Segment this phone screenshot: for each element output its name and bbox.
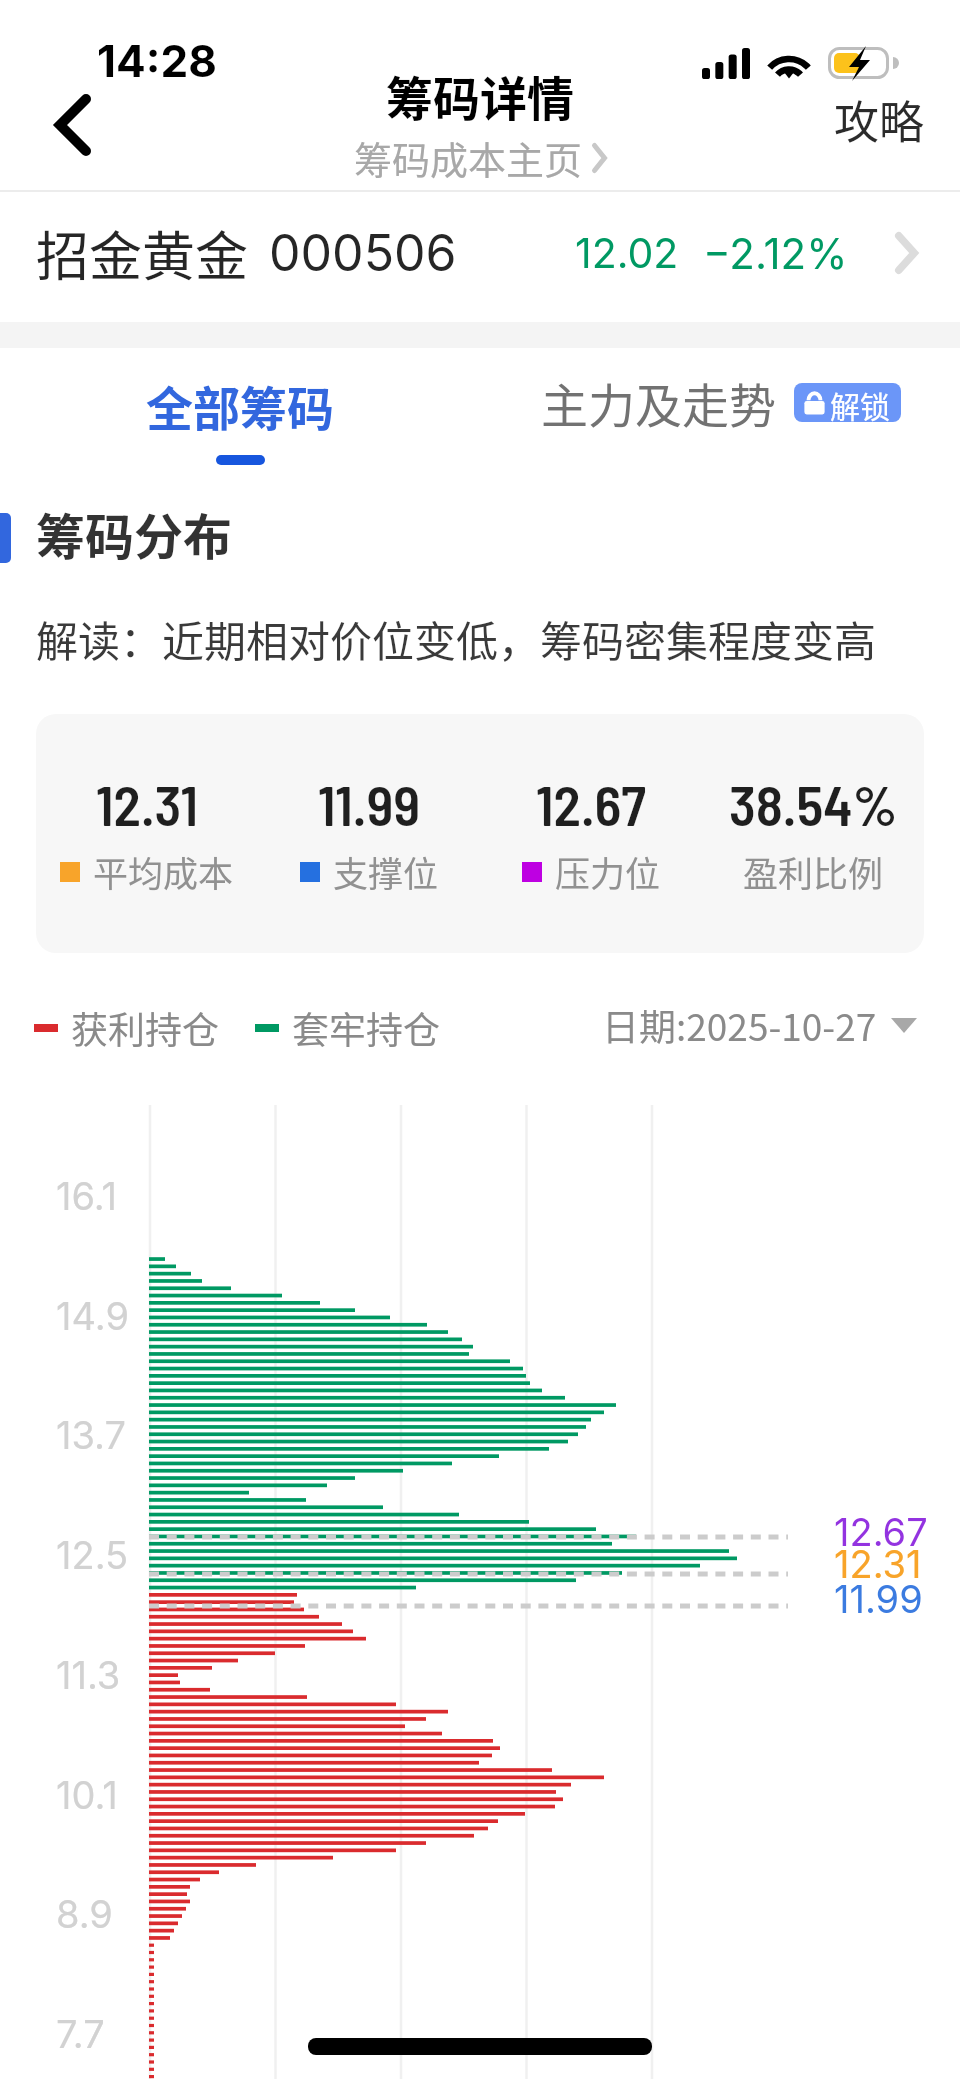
button[interactable]: 筹码成本主页	[354, 130, 607, 185]
staticText: 12.31	[96, 770, 198, 837]
button[interactable]: 攻略	[820, 79, 939, 160]
staticText: 解锁	[830, 383, 890, 422]
staticText: 12.67	[536, 770, 646, 837]
staticText: 获利持仓	[71, 1001, 219, 1055]
button[interactable]: 招金黄金	[0, 188, 960, 318]
staticText: 16.1	[56, 1173, 117, 1219]
staticText: 招金黄金	[36, 215, 248, 292]
staticText: 12.67	[834, 1509, 928, 1555]
staticText: 攻略	[834, 87, 925, 152]
staticText: 全部筹码	[146, 371, 334, 439]
staticText: 12.02	[575, 228, 679, 278]
staticText: −2.12%	[703, 228, 848, 279]
staticText: 筹码分布	[36, 498, 233, 569]
staticText: 8.9	[56, 1891, 113, 1937]
button[interactable]: 日期:2025-10-27	[602, 998, 917, 1052]
staticText: 12.31	[834, 1541, 922, 1587]
staticText: 000506	[269, 223, 457, 283]
staticText: 日期:2025-10-27	[602, 998, 877, 1052]
staticText: 支撑位	[333, 846, 439, 897]
staticText: 10.1	[56, 1772, 118, 1818]
staticText: 14:28	[97, 34, 217, 87]
staticText: 13.7	[56, 1412, 126, 1458]
staticText: 14.9	[56, 1293, 129, 1339]
staticText: 11.99	[834, 1576, 923, 1622]
staticText: 筹码成本主页	[354, 130, 583, 185]
staticText: 解读：近期相对价位变低，筹码密集程度变高	[36, 608, 877, 669]
staticText: 12.5	[56, 1532, 129, 1578]
staticText: 盈利比例	[743, 846, 884, 897]
staticText: 38.54%	[729, 770, 898, 837]
staticText: 平均成本	[93, 846, 234, 897]
staticText: 压力位	[555, 846, 661, 897]
staticText: 11.3	[56, 1652, 121, 1698]
button[interactable]: Back	[27, 79, 119, 171]
staticText: 筹码详情	[386, 61, 574, 129]
staticText: 11.99	[318, 770, 421, 837]
button[interactable]: 全部筹码	[0, 348, 480, 480]
staticText: 7.7	[56, 2011, 105, 2057]
button[interactable]: 主力及走势	[480, 348, 960, 480]
staticText: 主力及走势	[541, 368, 776, 436]
staticText: 套牢持仓	[292, 1001, 440, 1055]
